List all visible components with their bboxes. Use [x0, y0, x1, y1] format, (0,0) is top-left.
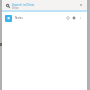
staticText: Drive — [12, 6, 19, 10]
button[interactable]: More options — [77, 15, 83, 21]
other: Search — [6, 4, 10, 8]
button[interactable]: Notes — [0, 12, 90, 23]
button[interactable]: Shared with others — [65, 15, 71, 21]
button[interactable]: Owner — [71, 15, 77, 21]
staticText: Search in Drive — [12, 3, 35, 7]
button[interactable]: Account — [78, 2, 84, 8]
button[interactable]: Search — [0, 0, 90, 10]
staticText: Notes — [15, 16, 23, 20]
